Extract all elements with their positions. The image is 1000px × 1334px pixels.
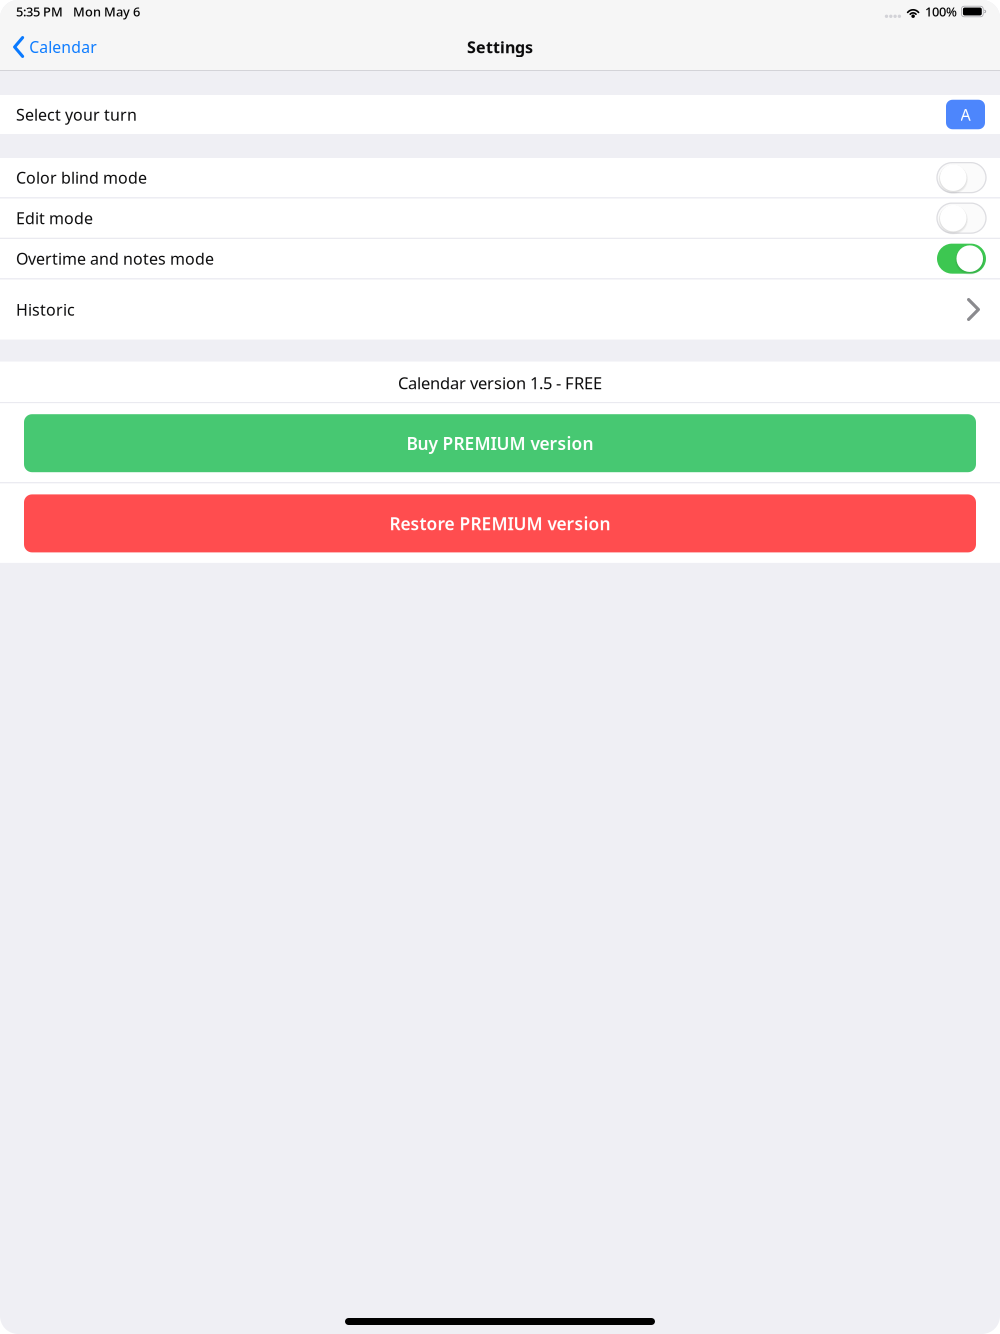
staticText: Restore PREMIUM version — [389, 512, 610, 535]
staticText: Historic — [16, 299, 75, 320]
button[interactable]: Overtime and notes mode — [0, 239, 1000, 278]
staticText: Calendar — [29, 36, 96, 58]
staticText: Buy PREMIUM version — [406, 431, 593, 455]
button[interactable]: Edit mode — [0, 198, 1000, 238]
staticText: A — [960, 104, 970, 125]
staticText: Calendar version 1.5 - FREE — [398, 371, 602, 394]
staticText: 5:35 PM — [16, 3, 63, 20]
staticText: Color blind mode — [16, 167, 147, 189]
button[interactable]: Calendar — [0, 23, 110, 71]
staticText: Select your turn — [16, 104, 137, 125]
button[interactable]: Historic — [0, 279, 1000, 339]
button[interactable]: Restore PREMIUM version — [0, 483, 1000, 563]
staticText: Overtime and notes mode — [16, 248, 214, 270]
staticText: 100% — [925, 3, 957, 20]
staticText: Mon May 6 — [73, 3, 140, 20]
button[interactable]: Buy PREMIUM version — [0, 403, 1000, 482]
button[interactable]: Color blind mode — [0, 158, 1000, 197]
button[interactable]: A — [946, 100, 985, 129]
button[interactable]: Select your turn — [0, 95, 1000, 134]
staticText: Edit mode — [16, 207, 93, 229]
staticText: Settings — [467, 36, 533, 58]
